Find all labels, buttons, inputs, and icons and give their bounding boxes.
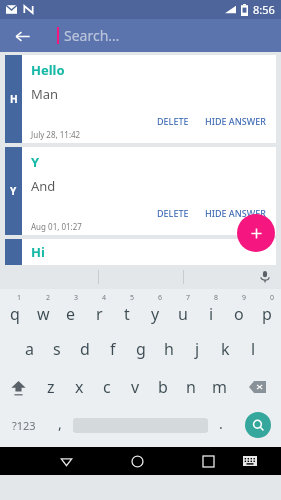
button[interactable]: d [71, 330, 99, 368]
button[interactable]: DELETE [149, 112, 197, 130]
staticText: 6 [158, 293, 163, 303]
button[interactable]: H [5, 55, 276, 143]
staticText: t [124, 303, 130, 325]
staticText: x [75, 376, 84, 398]
button[interactable]: 8 [197, 292, 225, 330]
button[interactable]: HIDE ANSWER [197, 112, 276, 130]
staticText: h [164, 338, 174, 360]
staticText: b [158, 376, 168, 398]
staticText: v [131, 376, 140, 398]
button[interactable]: j [183, 330, 211, 368]
button[interactable]: Back [8, 22, 36, 50]
button[interactable]: a [15, 330, 43, 368]
button[interactable]: Space [73, 406, 208, 444]
staticText: n [186, 376, 196, 398]
staticText: , [58, 414, 62, 433]
staticText: ?123 [12, 418, 36, 433]
staticText: a [25, 338, 34, 360]
button[interactable]: Y [5, 147, 276, 235]
button[interactable]: . [208, 406, 234, 444]
staticText: 5 [130, 293, 135, 303]
staticText: 8:56 [253, 2, 275, 17]
button[interactable]: DELETE [149, 204, 197, 222]
staticText: DELETE [157, 207, 189, 219]
staticText: 8 [214, 293, 219, 303]
button[interactable]: z [37, 368, 65, 406]
staticText: s [53, 338, 61, 360]
staticText: H [10, 92, 18, 106]
staticText: 1 [17, 293, 22, 303]
button[interactable]: Switch keyboard [229, 447, 271, 475]
button[interactable]: Shift [0, 368, 37, 406]
button[interactable]: 9 [225, 292, 253, 330]
button[interactable]: n [177, 368, 205, 406]
button[interactable]: 3 [57, 292, 85, 330]
staticText: Y [31, 153, 40, 171]
staticText: Y [10, 184, 17, 198]
button[interactable]: 2 [29, 292, 57, 330]
button[interactable]: HIDE ANSWER [197, 204, 276, 222]
button[interactable]: Voice input [255, 267, 275, 287]
button[interactable]: k [211, 330, 239, 368]
button[interactable]: Backspace [233, 368, 281, 406]
staticText: f [110, 338, 116, 360]
staticText: 2 [46, 293, 51, 303]
button[interactable]: l [239, 330, 267, 368]
button[interactable]: s [43, 330, 71, 368]
staticText: Hi [31, 243, 45, 261]
staticText: Search… [64, 26, 120, 45]
button[interactable]: x [65, 368, 93, 406]
staticText: i [209, 303, 214, 325]
button[interactable]: Search [234, 406, 281, 444]
staticText: Hello [31, 61, 65, 79]
button[interactable]: Recents [187, 447, 229, 475]
staticText: c [103, 376, 111, 398]
button[interactable]: 6 [141, 292, 169, 330]
staticText: m [212, 376, 227, 398]
staticText: 9 [242, 293, 247, 303]
staticText: And [31, 177, 56, 195]
button[interactable]: g [127, 330, 155, 368]
staticText: 4 [102, 293, 107, 303]
staticText: o [234, 303, 244, 325]
staticText: j [195, 338, 200, 360]
button[interactable]: h [155, 330, 183, 368]
staticText: e [66, 303, 76, 325]
button[interactable]: v [121, 368, 149, 406]
button[interactable]: m [205, 368, 233, 406]
staticText: z [47, 376, 55, 398]
button[interactable]: , [47, 406, 73, 444]
staticText: q [10, 303, 20, 325]
staticText: Man [31, 85, 59, 103]
button[interactable]: ?123 [0, 406, 47, 444]
staticText: 7 [186, 293, 191, 303]
button[interactable]: 1 [0, 292, 29, 330]
button[interactable]: Hi [5, 239, 276, 265]
staticText: g [136, 338, 146, 360]
button[interactable]: 7 [169, 292, 197, 330]
staticText: u [178, 303, 188, 325]
button[interactable]: Home [116, 447, 158, 475]
button[interactable]: 0 [253, 292, 281, 330]
staticText: w [37, 303, 50, 325]
staticText: k [221, 338, 230, 360]
staticText: 0 [270, 293, 275, 303]
button[interactable]: b [149, 368, 177, 406]
button[interactable]: 5 [113, 292, 141, 330]
button[interactable]: Search… [57, 26, 281, 45]
staticText: p [262, 303, 272, 325]
button[interactable]: c [93, 368, 121, 406]
button[interactable]: Back [45, 447, 87, 475]
button[interactable]: 4 [85, 292, 113, 330]
button[interactable]: f [99, 330, 127, 368]
staticText: y [151, 303, 160, 325]
staticText: July 28, 11:42 [31, 129, 81, 140]
staticText: . [219, 414, 223, 433]
button[interactable]: Add [237, 214, 275, 252]
staticText: d [80, 338, 90, 360]
staticText: l [251, 338, 256, 360]
staticText: 3 [74, 293, 79, 303]
staticText: Aug 01, 01:27 [31, 221, 82, 232]
staticText: HIDE ANSWER [205, 115, 266, 127]
staticText: DELETE [157, 115, 189, 127]
